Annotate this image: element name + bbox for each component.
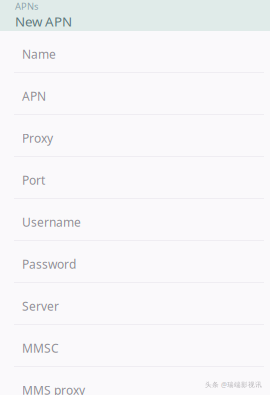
button[interactable]: Password bbox=[0, 241, 270, 283]
staticText: Username bbox=[22, 214, 81, 230]
staticText: 头条 @瑞端影视讯 bbox=[205, 380, 262, 389]
staticText: APN bbox=[22, 88, 46, 104]
button[interactable]: APN bbox=[0, 73, 270, 115]
button[interactable]: Port bbox=[0, 157, 270, 199]
staticText: New APN bbox=[15, 12, 72, 30]
button[interactable]: Name bbox=[0, 31, 270, 73]
button[interactable]: Proxy bbox=[0, 115, 270, 157]
staticText: Proxy bbox=[22, 130, 53, 146]
staticText: Password bbox=[22, 256, 76, 272]
button[interactable]: MMS proxy bbox=[0, 367, 270, 395]
staticText: MMSC bbox=[22, 340, 59, 356]
staticText: Server bbox=[22, 298, 59, 314]
staticText: APNs bbox=[15, 0, 38, 12]
button[interactable]: MMSC bbox=[0, 325, 270, 367]
button[interactable]: Username bbox=[0, 199, 270, 241]
staticText: MMS proxy bbox=[22, 382, 85, 395]
staticText: Port bbox=[22, 172, 45, 188]
button[interactable]: Server bbox=[0, 283, 270, 325]
staticText: Name bbox=[22, 46, 56, 62]
